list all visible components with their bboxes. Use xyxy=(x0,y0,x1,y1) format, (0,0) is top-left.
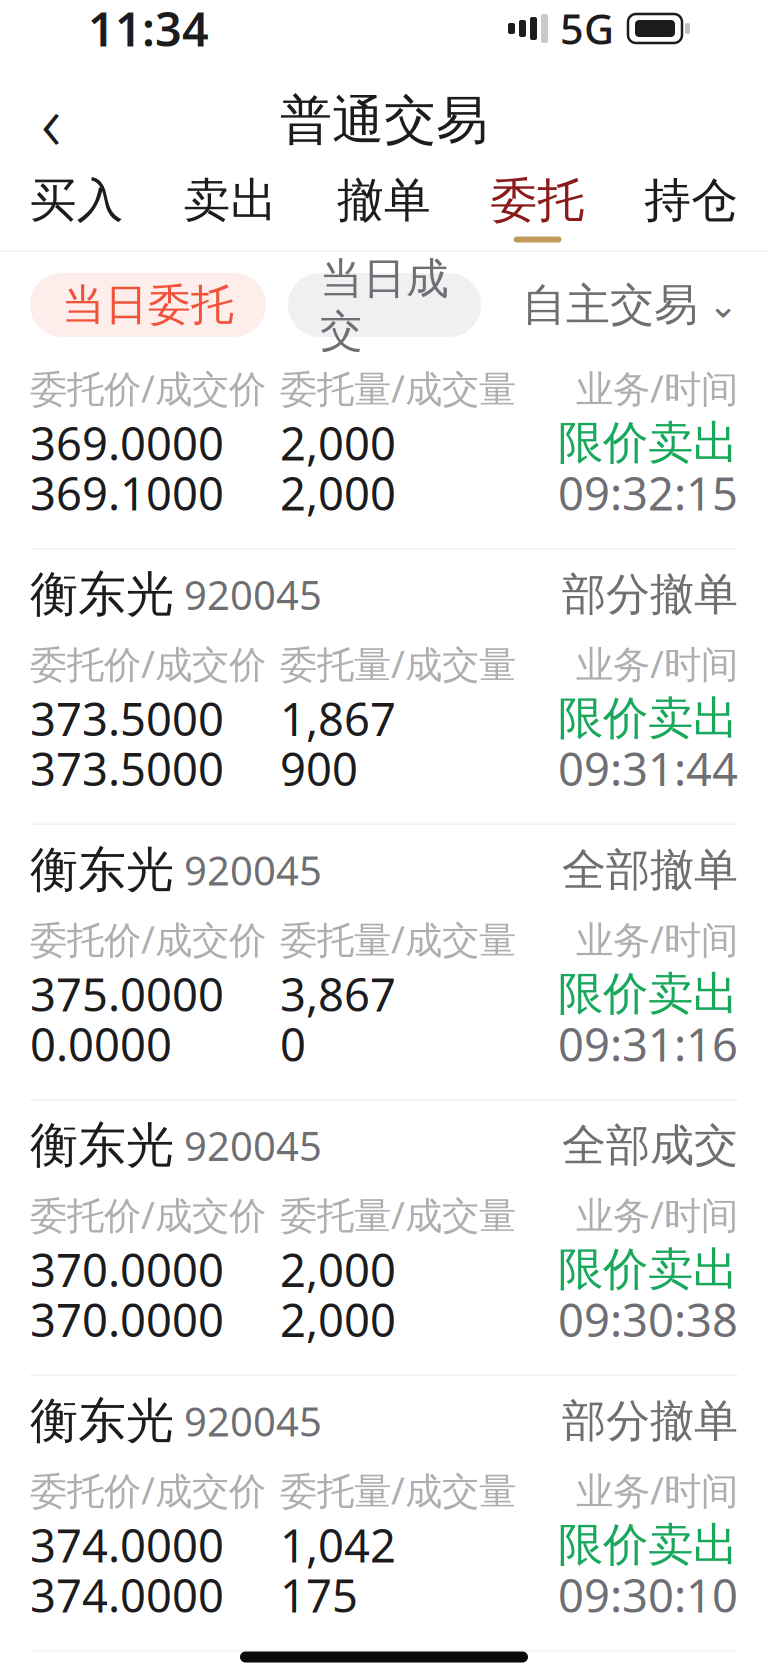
staticText: 09:30:10 xyxy=(558,1565,738,1625)
staticText: 370.0000 xyxy=(30,1239,224,1300)
staticText: 委托 xyxy=(491,172,585,229)
staticText: 0 xyxy=(280,1014,306,1074)
staticText: 374.0000 xyxy=(30,1515,224,1575)
staticText: 委托量/成交量 xyxy=(280,914,516,964)
button[interactable]: 当日委托 xyxy=(30,273,266,337)
staticText: 委托量/成交量 xyxy=(280,1465,516,1515)
button[interactable]: 衡东光 xyxy=(0,1376,768,1650)
staticText: 业务/时间 xyxy=(576,1190,738,1239)
staticText: 全部成交 xyxy=(562,1118,738,1172)
staticText: ⌄ xyxy=(708,285,738,325)
button[interactable]: 卖出 xyxy=(154,164,307,250)
staticText: 委托价/成交价 xyxy=(30,639,266,688)
staticText: 373.5000 xyxy=(30,688,224,749)
staticText: 09:31:16 xyxy=(558,1014,738,1074)
staticText: 普通交易 xyxy=(280,89,488,152)
staticText: 175 xyxy=(280,1565,358,1625)
staticText: 3,867 xyxy=(280,964,396,1024)
staticText: 限价卖出 xyxy=(558,1242,738,1297)
staticText: 当日委托 xyxy=(62,279,234,331)
button[interactable]: 返回 xyxy=(12,81,90,159)
staticText: 委托量/成交量 xyxy=(280,639,516,688)
button[interactable]: 衡东光 xyxy=(0,825,768,1099)
staticText: 373.5000 xyxy=(30,738,224,799)
staticText: 卖出 xyxy=(183,172,277,229)
staticText: 920045 xyxy=(174,1119,322,1172)
staticText: 业务/时间 xyxy=(576,363,738,413)
button[interactable]: 委托 xyxy=(461,164,614,250)
staticText: 11:34 xyxy=(88,0,209,59)
button[interactable]: 撤单 xyxy=(307,164,461,250)
staticText: 自主交易 xyxy=(522,278,698,332)
staticText: 业务/时间 xyxy=(576,639,738,688)
staticText: 2,000 xyxy=(280,1289,396,1350)
staticText: 委托价/成交价 xyxy=(30,1465,266,1515)
staticText: 衡东光 xyxy=(30,565,174,624)
staticText: 09:30:38 xyxy=(558,1289,738,1350)
staticText: 09:31:44 xyxy=(558,738,738,799)
staticText: 持仓 xyxy=(644,172,738,229)
staticText: 920045 xyxy=(174,568,322,621)
staticText: 撤单 xyxy=(337,172,431,229)
staticText: 370.0000 xyxy=(30,1289,224,1350)
staticText: 全部撤单 xyxy=(562,843,738,897)
staticText: 衡东光 xyxy=(30,840,174,899)
staticText: 2,000 xyxy=(280,413,396,473)
staticText: 限价卖出 xyxy=(558,1517,738,1573)
staticText: 1,867 xyxy=(280,688,396,749)
staticText: 374.0000 xyxy=(30,1565,224,1625)
staticText: 部分撤单 xyxy=(562,567,738,621)
staticText: ‹ xyxy=(41,69,61,172)
button[interactable]: 当日成交 xyxy=(288,273,481,337)
staticText: 920045 xyxy=(174,1394,322,1447)
staticText: 委托价/成交价 xyxy=(30,363,266,413)
button[interactable]: 自主交易 xyxy=(522,273,738,337)
staticText: 369.0000 xyxy=(30,413,224,473)
staticText: 369.1000 xyxy=(30,463,224,523)
staticText: 买入 xyxy=(30,172,124,229)
button[interactable]: 衡东光 xyxy=(0,549,768,823)
staticText: 衡东光 xyxy=(30,1391,174,1450)
staticText: 375.0000 xyxy=(30,964,224,1024)
staticText: 委托量/成交量 xyxy=(280,1190,516,1239)
button[interactable]: 持仓 xyxy=(614,164,768,250)
staticText: 委托价/成交价 xyxy=(30,1190,266,1239)
button[interactable]: 衡东光 xyxy=(0,1100,768,1374)
staticText: 900 xyxy=(280,738,358,799)
button[interactable]: 买入 xyxy=(0,164,154,250)
staticText: 2,000 xyxy=(280,1239,396,1300)
staticText: 0.0000 xyxy=(30,1014,172,1074)
staticText: 业务/时间 xyxy=(576,914,738,964)
staticText: 委托量/成交量 xyxy=(280,363,516,413)
staticText: 5G xyxy=(560,1,614,56)
staticText: 限价卖出 xyxy=(558,691,738,746)
staticText: 920045 xyxy=(174,843,322,896)
staticText: 限价卖出 xyxy=(558,415,738,471)
staticText: 衡东光 xyxy=(30,1116,174,1175)
staticText: 限价卖出 xyxy=(558,966,738,1022)
staticText: 业务/时间 xyxy=(576,1465,738,1515)
staticText: 部分撤单 xyxy=(562,1394,738,1448)
staticText: 09:32:15 xyxy=(558,463,738,523)
staticText: 2,000 xyxy=(280,463,396,523)
staticText: 委托价/成交价 xyxy=(30,914,266,964)
staticText: 1,042 xyxy=(280,1515,396,1575)
staticText: 当日成交 xyxy=(320,253,449,357)
